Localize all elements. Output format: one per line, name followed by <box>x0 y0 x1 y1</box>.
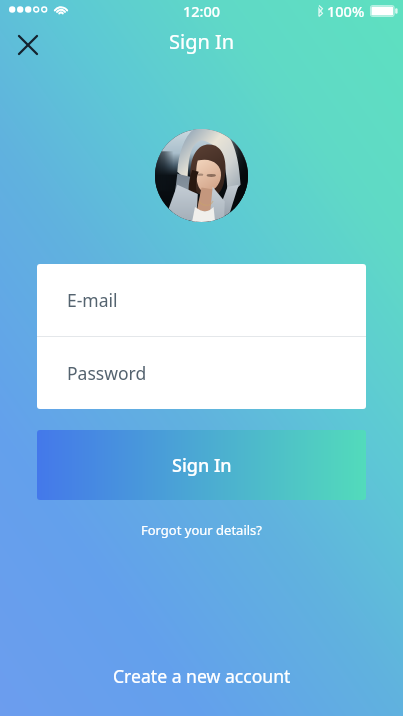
button[interactable]: E-mail <box>37 264 366 336</box>
button[interactable]: Create a new account <box>0 658 403 694</box>
staticText: 12:00 <box>183 1 221 21</box>
button[interactable]: Close <box>7 24 49 66</box>
button[interactable]: Forgot your details? <box>0 515 403 545</box>
staticText: Forgot your details? <box>141 521 262 539</box>
button[interactable]: Password <box>37 337 366 409</box>
button[interactable]: Sign In <box>37 430 366 500</box>
staticText: E-mail <box>67 288 118 312</box>
staticText: Create a new account <box>113 664 291 688</box>
staticText: 100% <box>327 1 365 21</box>
staticText: Password <box>67 361 147 385</box>
staticText: Sign In <box>172 453 232 478</box>
staticText: Sign In <box>169 28 235 55</box>
